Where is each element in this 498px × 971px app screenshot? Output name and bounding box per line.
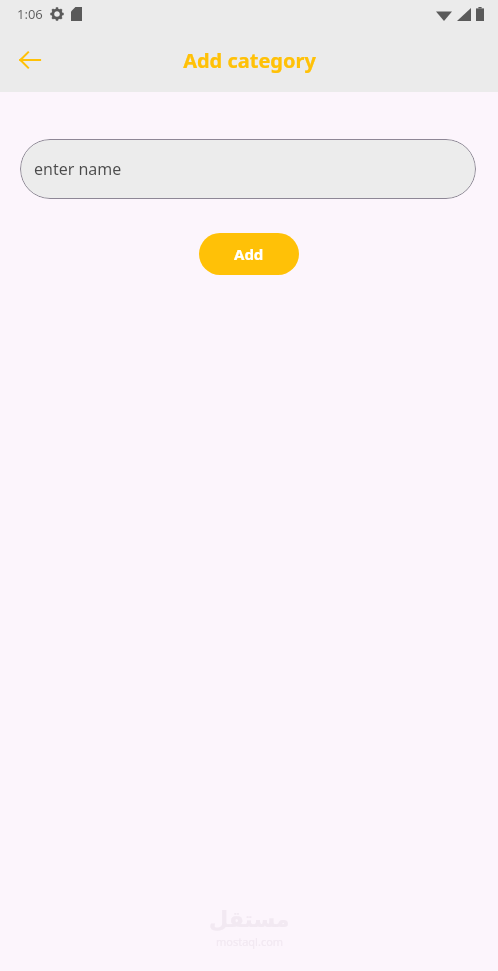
staticText: mostaql.com [216,934,284,949]
staticText: Add category [183,47,316,74]
staticText: enter name [34,158,122,180]
staticText: 1:06 [17,5,43,23]
button[interactable]: Back [10,40,50,80]
button[interactable]: enter name [20,139,476,199]
staticText: مستقل [209,907,290,933]
staticText: Add [234,244,264,264]
button[interactable]: Add [199,233,299,275]
